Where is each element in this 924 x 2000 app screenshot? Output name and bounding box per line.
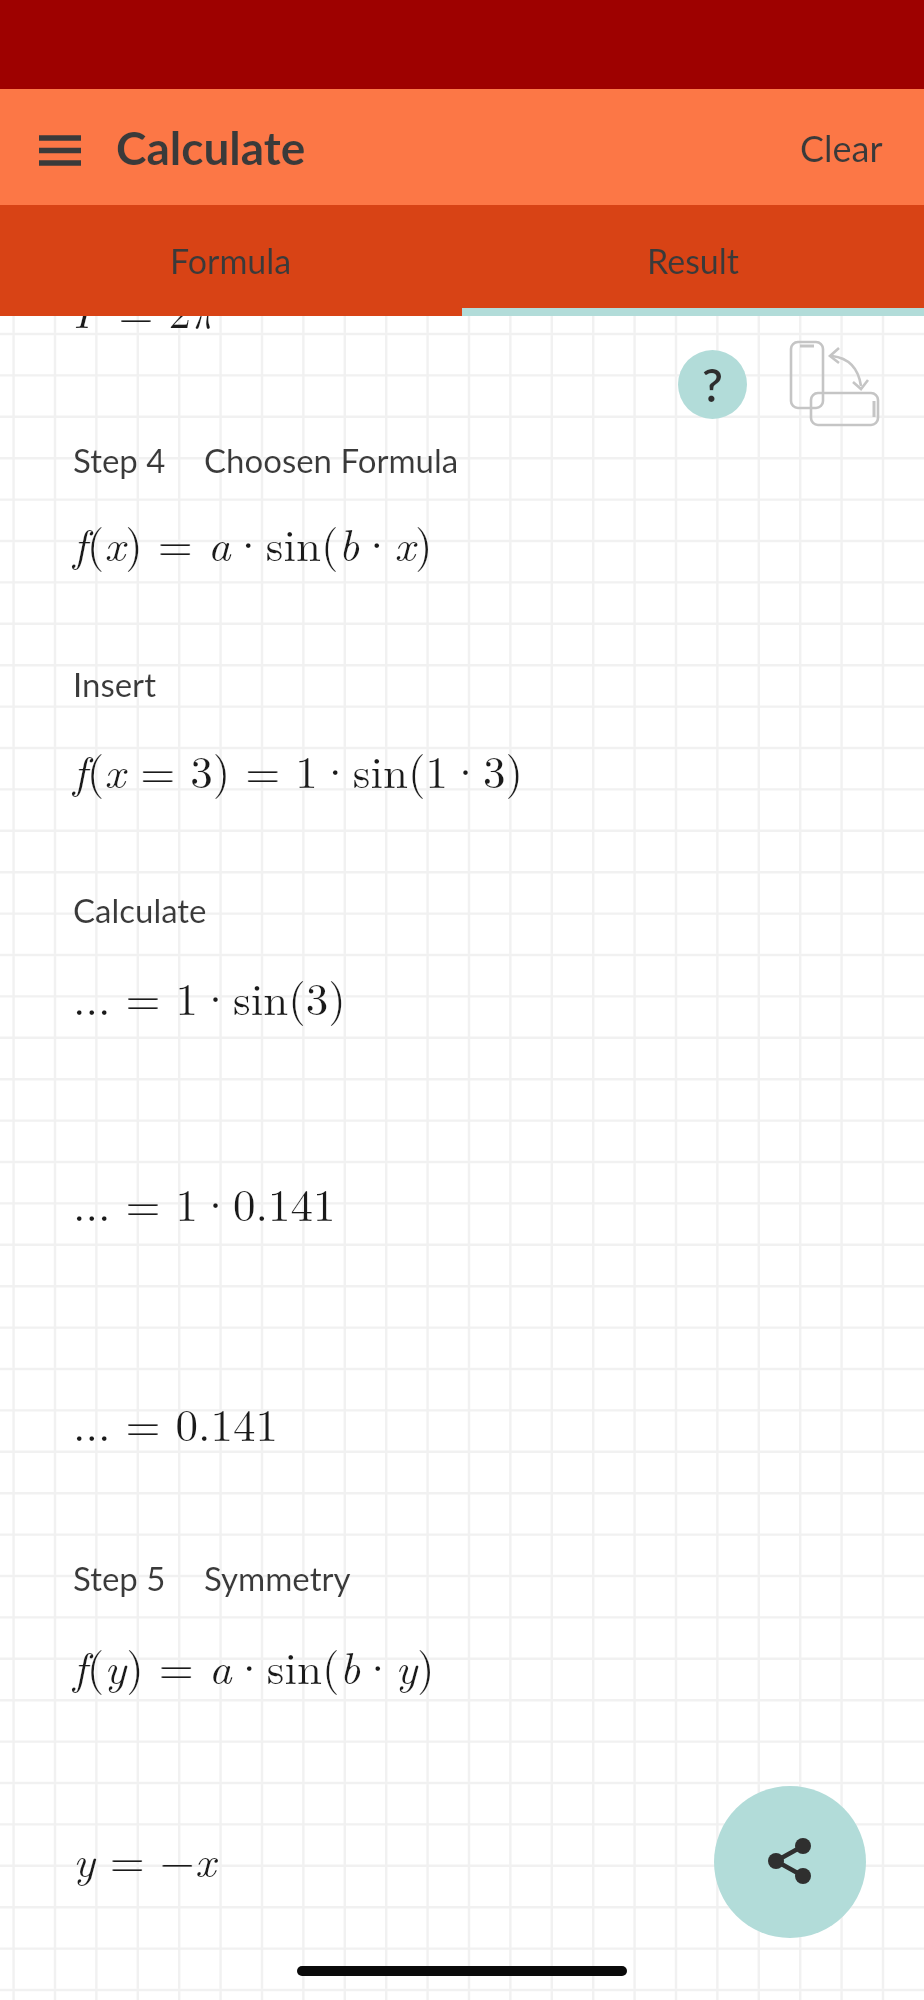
staticText: Calculate: [73, 890, 207, 930]
button[interactable]: ?: [678, 350, 747, 419]
staticText: Choosen Formula: [204, 440, 459, 480]
staticText: Insert: [73, 664, 156, 704]
staticText: Step 4: [73, 440, 166, 480]
staticText: Calculate: [116, 120, 306, 175]
button[interactable]: [785, 335, 885, 430]
staticText: Clear: [800, 126, 883, 169]
staticText: P = 2𝜋: [73, 277, 217, 341]
button[interactable]: [39, 135, 81, 167]
staticText: f(x = 3) = 1·sin(1·3): [73, 737, 523, 801]
staticText: f(x) = a·sin(b·x): [73, 510, 433, 574]
staticText: Formula: [170, 240, 292, 281]
staticText: Result: [647, 240, 740, 281]
staticText: Symmetry: [204, 1558, 351, 1598]
staticText: y = −x: [73, 1826, 216, 1890]
staticText: ?: [702, 357, 723, 412]
button[interactable]: Result: [462, 205, 924, 316]
staticText: f(y) = a·sin(b·y): [73, 1633, 435, 1697]
staticText: ... = 1·sin(3): [73, 964, 346, 1028]
staticText: ... = 1·0.141: [73, 1170, 336, 1234]
staticText: ... = 0.141: [73, 1390, 279, 1454]
button[interactable]: Formula: [0, 205, 462, 316]
button[interactable]: [714, 1786, 866, 1938]
staticText: Step 5: [73, 1558, 166, 1598]
button[interactable]: Clear: [800, 126, 883, 169]
